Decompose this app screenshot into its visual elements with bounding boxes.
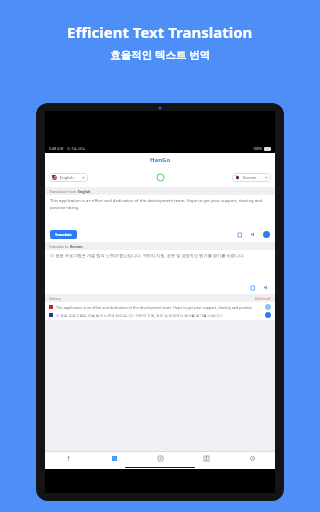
- staticText: Translate to: [49, 244, 70, 249]
- staticText: 5:48 오후: [49, 146, 64, 151]
- button[interactable]: Voice: [45, 452, 91, 465]
- staticText: English: [78, 189, 91, 194]
- staticText: This application is an effort and dedica…: [56, 305, 262, 310]
- button[interactable]: Copy translation: [250, 284, 257, 291]
- button[interactable]: 이 응용 프로그램은 개발 팀의 노력과 헌신입니다. 귀하의 지원, 공유 및…: [49, 312, 271, 318]
- staticText: Delete all: [255, 296, 271, 301]
- button[interactable]: Delete all: [255, 296, 271, 301]
- staticText: Translate: [55, 232, 72, 237]
- button[interactable]: Translate: [50, 230, 77, 239]
- button[interactable]: Share: [263, 231, 270, 238]
- button[interactable]: Korean: [232, 173, 271, 182]
- staticText: 이 응용 프로그램은 개발 팀의 노력과 헌신입니다. 귀하의 지원, 공유 및…: [56, 313, 223, 318]
- staticText: History: [49, 296, 61, 301]
- button[interactable]: English: [49, 173, 88, 182]
- button[interactable]: Swap languages: [155, 172, 165, 182]
- staticText: 100%: [253, 146, 262, 151]
- button[interactable]: Phrases: [183, 452, 229, 465]
- button[interactable]: Camera: [137, 452, 183, 465]
- staticText: 이 응용 프로그램은 개발 팀의 노력과 헌신입니다. 귀하의 지원, 공유 및…: [50, 253, 245, 259]
- staticText: Korean: [243, 175, 257, 180]
- button[interactable]: Copy: [237, 231, 244, 238]
- staticText: 목 8월 48일: [67, 146, 86, 151]
- button[interactable]: Settings: [229, 452, 275, 465]
- button[interactable]: Listen: [250, 231, 257, 238]
- staticText: 효율적인 텍스트 번역: [110, 48, 210, 62]
- staticText: Translation from: [49, 189, 78, 194]
- staticText: Korean: [70, 244, 83, 249]
- staticText: This application is an effort and dedica…: [50, 198, 270, 210]
- button[interactable]: Text: [91, 452, 137, 465]
- staticText: English: [60, 175, 74, 180]
- staticText: Efficient Text Translation: [67, 22, 253, 42]
- button[interactable]: This application is an effort and dedica…: [49, 304, 271, 310]
- button[interactable]: Listen translation: [263, 284, 270, 291]
- staticText: HanGo: [150, 156, 171, 164]
